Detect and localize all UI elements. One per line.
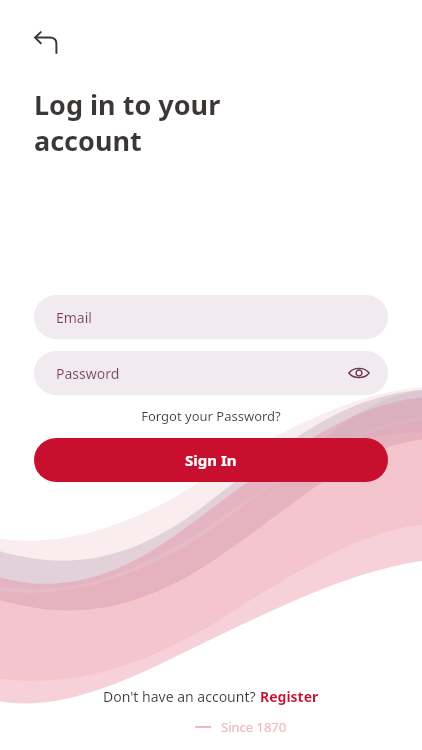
staticText: Password bbox=[56, 364, 120, 383]
button[interactable]: Password bbox=[34, 351, 388, 395]
staticText: Email bbox=[56, 308, 92, 327]
staticText: Sign In bbox=[185, 450, 237, 470]
button[interactable]: Don't have an account? bbox=[103, 687, 319, 706]
button[interactable]: Show password bbox=[342, 356, 376, 390]
staticText: Log in to your account bbox=[34, 86, 221, 159]
staticText: Since 1870 bbox=[221, 718, 287, 736]
button[interactable]: Forgot your Password? bbox=[0, 407, 422, 425]
button[interactable]: Sign In bbox=[34, 438, 388, 482]
staticText: Don't have an account? bbox=[103, 687, 260, 706]
button[interactable]: Back bbox=[24, 20, 68, 64]
staticText: Register bbox=[260, 687, 319, 706]
button[interactable]: Email bbox=[34, 295, 388, 339]
staticText: Forgot your Password? bbox=[141, 407, 281, 425]
